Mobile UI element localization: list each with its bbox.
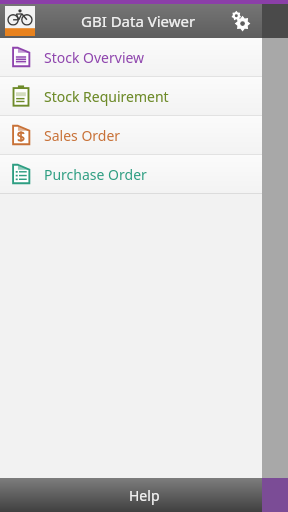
button[interactable]: Help: [0, 478, 288, 512]
staticText: Purchase Order: [44, 165, 147, 184]
button[interactable]: Stock Overview: [0, 38, 262, 76]
button[interactable]: App icon: [5, 6, 35, 36]
staticText: Stock Requirement: [44, 87, 169, 106]
staticText: Sales Order: [44, 126, 121, 145]
staticText: Help: [129, 486, 160, 505]
staticText: GBI Data Viewer: [81, 11, 196, 31]
button[interactable]: Sales Order: [0, 116, 262, 154]
staticText: Stock Overview: [44, 48, 145, 67]
button[interactable]: Settings: [228, 8, 254, 34]
button[interactable]: Stock Requirement: [0, 77, 262, 115]
button[interactable]: Purchase Order: [0, 155, 262, 193]
